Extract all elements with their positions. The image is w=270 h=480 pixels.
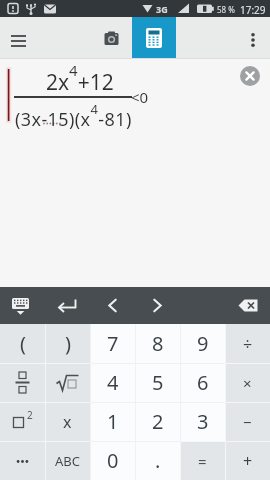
staticText: 2 — [27, 408, 33, 422]
button[interactable]: 6 — [180, 363, 225, 402]
button[interactable] — [240, 27, 266, 53]
button[interactable] — [0, 287, 45, 324]
staticText: − — [243, 412, 252, 432]
button[interactable]: 1 — [90, 402, 135, 441]
staticText: ÷ — [243, 333, 253, 355]
button[interactable]: ( — [0, 324, 45, 363]
button[interactable]: 4 — [90, 363, 135, 402]
staticText: ABC — [55, 452, 80, 470]
button[interactable]: 5 — [135, 363, 180, 402]
staticText: = — [198, 451, 207, 471]
button[interactable] — [90, 287, 135, 324]
button[interactable]: ) — [45, 324, 90, 363]
staticText: x — [63, 411, 72, 433]
staticText: 7 — [107, 330, 119, 357]
button[interactable]: 7 — [90, 324, 135, 363]
staticText: 3 — [197, 408, 209, 435]
button[interactable]: x — [45, 402, 90, 441]
button[interactable]: 0 — [90, 441, 135, 480]
button[interactable] — [96, 26, 127, 52]
staticText: × — [243, 373, 252, 393]
staticText: + — [243, 450, 253, 472]
staticText: 9 — [197, 330, 209, 357]
staticText: 2 — [152, 408, 164, 435]
button[interactable]: ÷ — [225, 324, 270, 363]
button[interactable]: 8 — [135, 324, 180, 363]
staticText: 5 — [152, 369, 164, 396]
button[interactable]: 2 — [135, 402, 180, 441]
button[interactable] — [0, 363, 45, 402]
button[interactable]: − — [225, 402, 270, 441]
staticText: . — [155, 447, 161, 474]
button[interactable] — [45, 363, 90, 402]
staticText: 17:29 — [240, 3, 266, 17]
staticText: 58 % — [217, 4, 235, 15]
staticText: 0 — [107, 447, 119, 474]
staticText: ) — [65, 330, 71, 357]
button[interactable]: ABC — [45, 441, 90, 480]
button[interactable] — [45, 287, 90, 324]
staticText: 4 — [107, 369, 119, 396]
button[interactable] — [132, 17, 176, 59]
staticText: 6 — [197, 369, 209, 396]
button[interactable]: 3 — [180, 402, 225, 441]
staticText: 8 — [152, 330, 164, 357]
staticText: <0 — [131, 87, 149, 107]
staticText: 1 — [107, 408, 119, 435]
button[interactable] — [0, 441, 45, 480]
button[interactable]: × — [225, 363, 270, 402]
staticText: (3x-15)(x4-81) — [15, 100, 132, 131]
button[interactable]: = — [180, 441, 225, 480]
button[interactable] — [5, 28, 32, 54]
button[interactable]: + — [225, 441, 270, 480]
button[interactable]: 9 — [180, 324, 225, 363]
staticText: 3G — [156, 3, 168, 15]
button[interactable] — [135, 287, 180, 324]
staticText: ( — [20, 330, 26, 357]
button[interactable] — [240, 66, 260, 86]
button[interactable] — [225, 287, 270, 324]
staticText: 2x4+12 — [46, 60, 114, 96]
button[interactable]: 2 — [0, 402, 45, 441]
button[interactable]: . — [135, 441, 180, 480]
